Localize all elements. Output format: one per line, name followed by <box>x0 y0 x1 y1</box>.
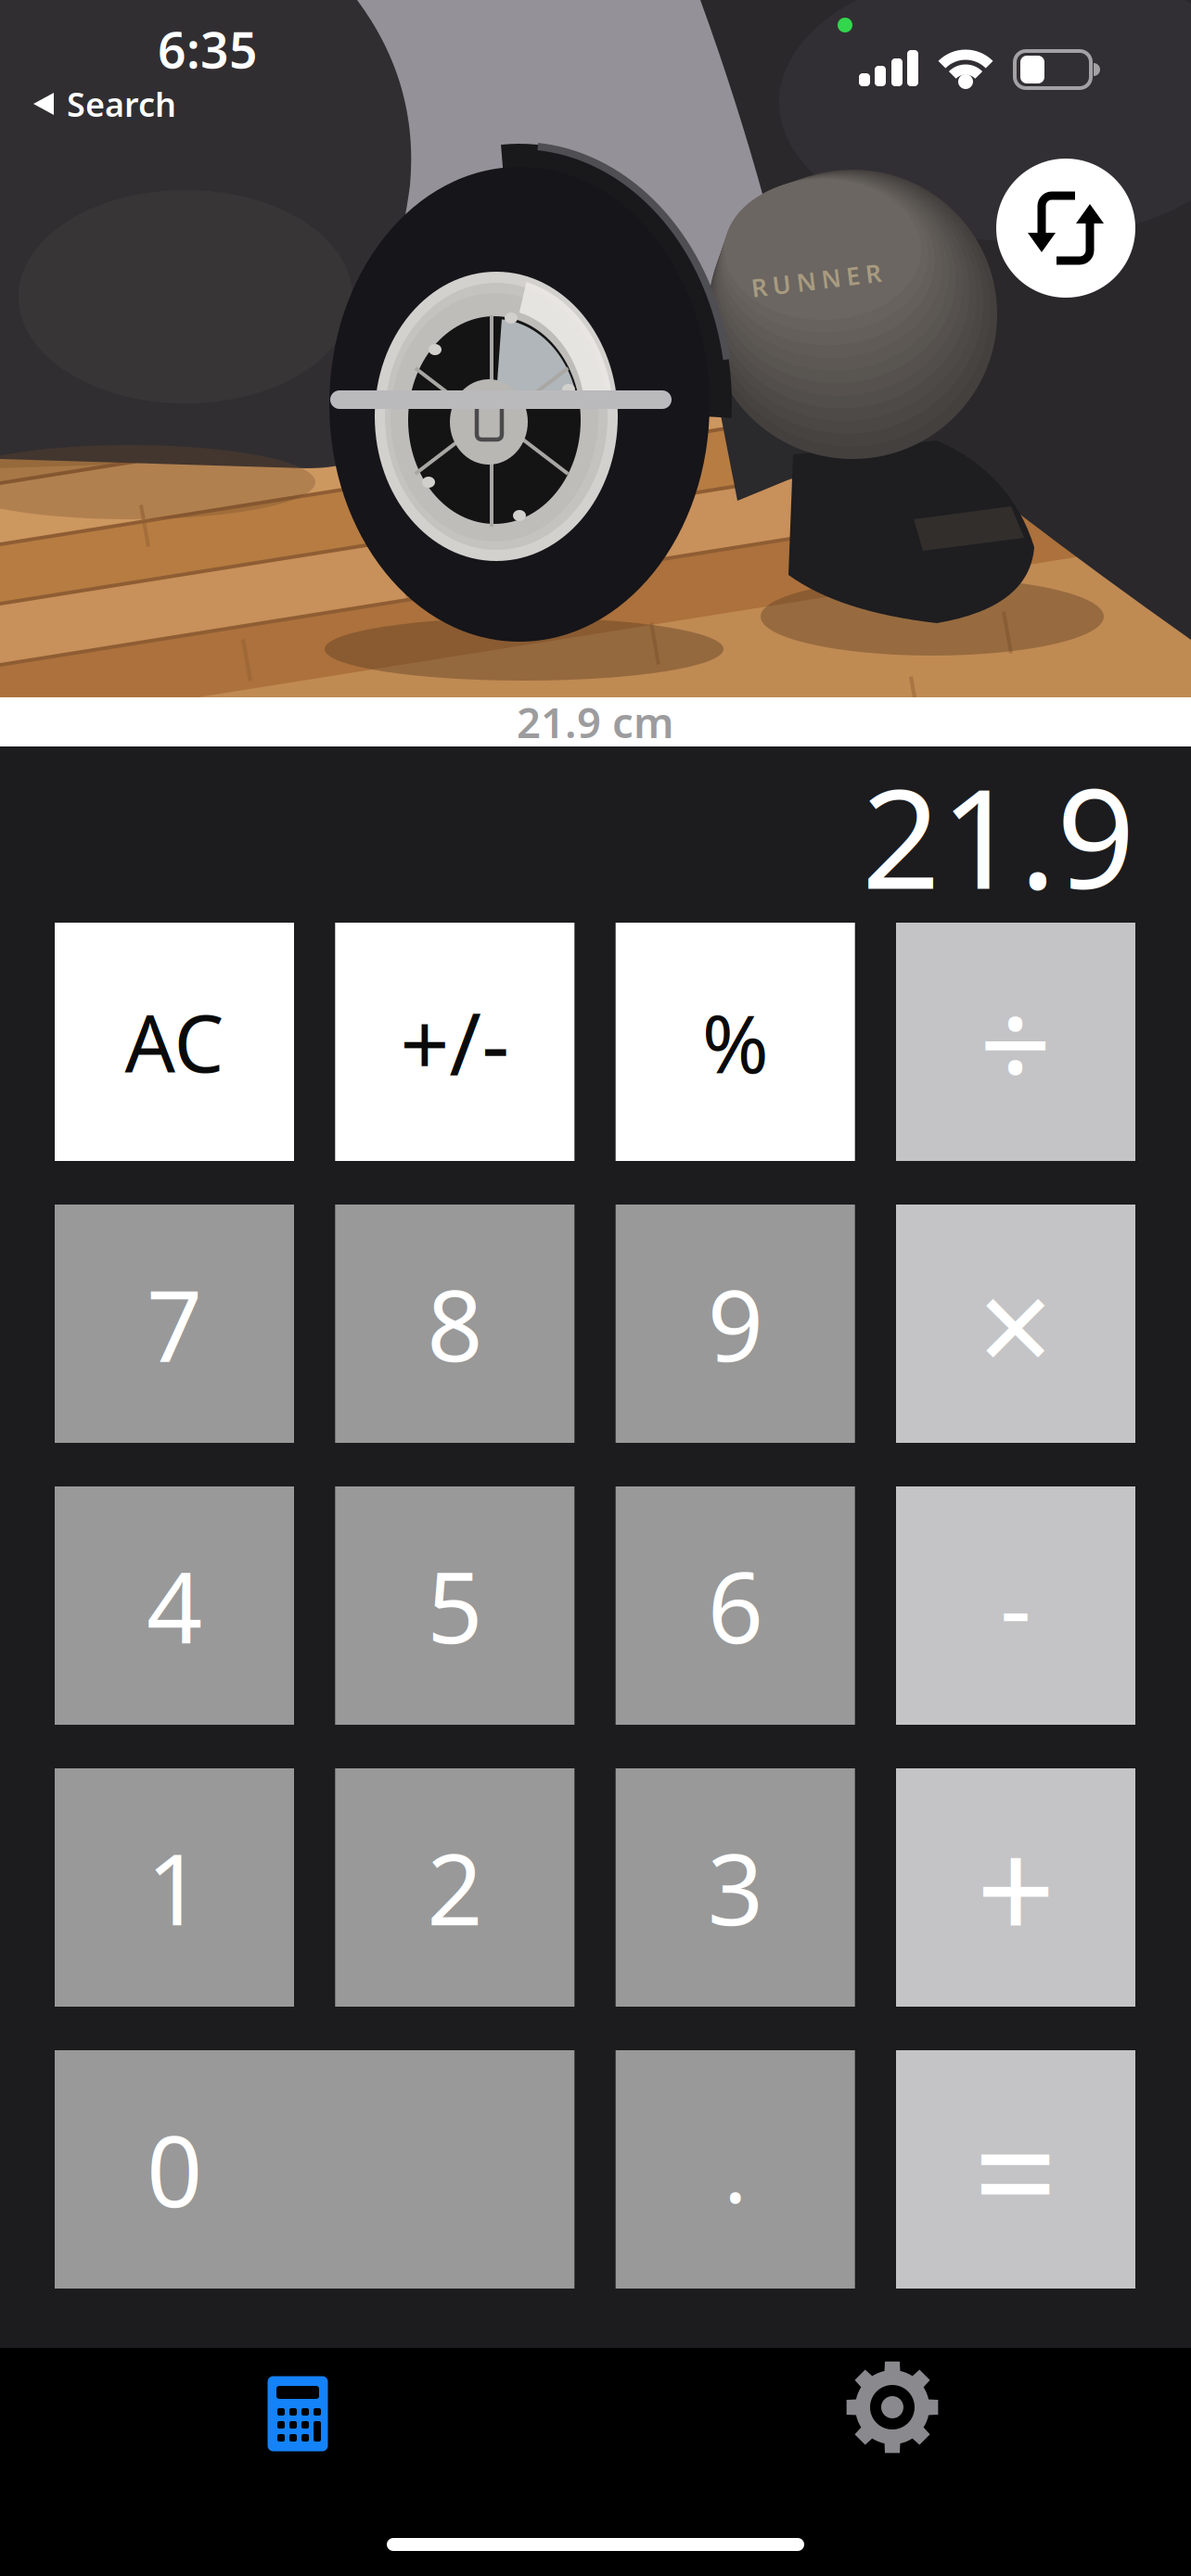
button[interactable]: Calculator <box>205 2349 391 2479</box>
staticText: 8 <box>427 1259 483 1389</box>
staticText: 6 <box>707 1541 763 1671</box>
staticText: 4 <box>147 1541 202 1671</box>
button[interactable]: = <box>896 2050 1135 2289</box>
button[interactable]: 5 <box>335 1486 574 1725</box>
staticText: 5 <box>427 1541 483 1671</box>
staticText: - <box>1000 1541 1031 1671</box>
staticText: RUNNER <box>751 264 882 296</box>
button[interactable]: AC <box>55 923 294 1161</box>
staticText: 6:35 <box>158 16 258 82</box>
button[interactable]: Back to Search <box>32 82 176 126</box>
button[interactable]: 2 <box>335 1768 574 2007</box>
button[interactable]: 9 <box>616 1205 855 1443</box>
button[interactable]: 6 <box>616 1486 855 1725</box>
button[interactable]: - <box>896 1486 1135 1725</box>
button[interactable]: × <box>896 1205 1135 1443</box>
staticText: 21.9 <box>862 744 1135 927</box>
staticText: 21.9 cm <box>517 694 674 750</box>
button[interactable]: 3 <box>616 1768 855 2007</box>
staticText: 7 <box>147 1259 202 1389</box>
staticText: 9 <box>707 1259 763 1389</box>
button[interactable]: Flip measurement <box>996 159 1135 298</box>
staticText: AC <box>125 989 224 1094</box>
staticText: × <box>978 1236 1054 1412</box>
button[interactable]: Settings <box>800 2349 985 2479</box>
button[interactable]: . <box>616 2050 855 2289</box>
staticText: . <box>724 2112 747 2227</box>
staticText: % <box>702 988 769 1095</box>
staticText: 1 <box>147 1823 202 1952</box>
button[interactable]: ÷ <box>896 923 1135 1161</box>
staticText: = <box>973 2071 1058 2268</box>
staticText: ÷ <box>979 957 1052 1126</box>
button[interactable]: 1 <box>55 1768 294 2007</box>
button[interactable]: + <box>896 1768 1135 2007</box>
staticText: 0 <box>147 2105 202 2234</box>
staticText: 2 <box>427 1823 483 1952</box>
staticText: Search <box>67 82 176 126</box>
button[interactable]: % <box>616 923 855 1161</box>
button[interactable]: 4 <box>55 1486 294 1725</box>
staticText: 3 <box>707 1823 763 1952</box>
staticText: +/- <box>400 984 510 1099</box>
button[interactable]: +/- <box>335 923 574 1161</box>
button[interactable]: 8 <box>335 1205 574 1443</box>
button[interactable]: 0 <box>55 2050 574 2289</box>
button[interactable]: 7 <box>55 1205 294 1443</box>
staticText: + <box>976 1796 1055 1979</box>
